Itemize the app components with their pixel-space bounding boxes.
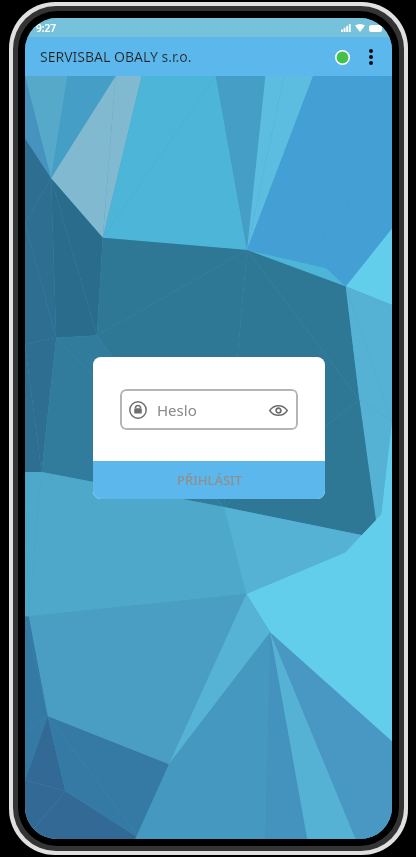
button[interactable]: Connection status — [328, 43, 356, 71]
staticText: PŘIHLÁSIT — [177, 471, 242, 489]
staticText: Heslo — [157, 400, 197, 420]
staticText: 9:27 — [36, 21, 56, 35]
button[interactable]: Show password — [267, 399, 289, 421]
button[interactable]: More options — [356, 42, 386, 72]
button[interactable]: PŘIHLÁSIT — [93, 461, 325, 499]
button[interactable]: Heslo — [120, 389, 298, 430]
staticText: SERVISBAL OBALY s.r.o. — [40, 47, 192, 66]
